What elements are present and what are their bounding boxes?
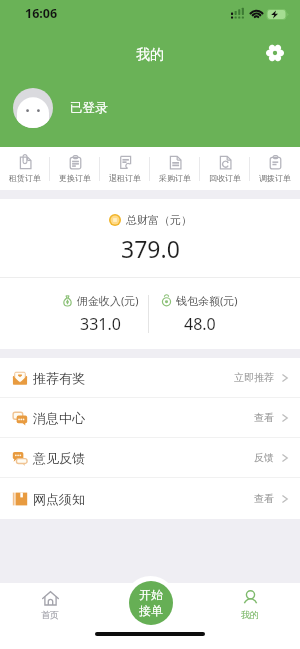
button[interactable]: 调拨订单	[250, 147, 300, 190]
button[interactable]: Settings	[262, 40, 288, 66]
button[interactable]: 推荐有奖	[0, 358, 300, 397]
staticText: 查看	[254, 492, 274, 505]
button[interactable]: 消息中心	[0, 398, 300, 437]
staticText: 首页	[41, 609, 59, 620]
staticText: 采购订单	[159, 173, 191, 183]
button[interactable]: 退租订单	[100, 147, 150, 190]
staticText: 推荐有奖	[33, 370, 85, 386]
staticText: 网点须知	[33, 491, 85, 507]
button[interactable]: 采购订单	[150, 147, 200, 190]
staticText: 48.0	[184, 313, 216, 335]
button[interactable]: 租赁订单	[0, 147, 50, 190]
staticText: 回收订单	[209, 173, 241, 183]
staticText: 立即推荐	[234, 371, 274, 384]
staticText: 租赁订单	[9, 173, 41, 183]
button[interactable]: 回收订单	[200, 147, 250, 190]
button[interactable]: 网点须知	[0, 478, 300, 519]
staticText: 379.0	[121, 233, 180, 264]
button[interactable]: 开始 接单	[129, 581, 173, 625]
staticText: 查看	[254, 411, 274, 424]
button[interactable]: 更换订单	[50, 147, 100, 190]
staticText: 总财富（元）	[126, 213, 192, 227]
staticText: 开始 接单	[139, 587, 163, 619]
staticText: 调拨订单	[259, 173, 291, 183]
staticText: 更换订单	[59, 173, 91, 183]
staticText: 16:06	[25, 5, 58, 22]
staticText: 反馈	[254, 451, 274, 464]
button[interactable]: 佣金收入(元)	[62, 278, 139, 349]
staticText: 钱包余额(元)	[176, 293, 238, 308]
staticText: 退租订单	[109, 173, 141, 183]
staticText: 我的	[136, 46, 164, 64]
staticText: 我的	[241, 609, 259, 620]
staticText: 意见反馈	[33, 450, 85, 466]
button[interactable]: 我的	[200, 583, 300, 627]
staticText: 佣金收入(元)	[77, 293, 139, 308]
button[interactable]: 首页	[0, 583, 100, 627]
staticText: 已登录	[70, 100, 108, 116]
button[interactable]: 钱包余额(元)	[161, 278, 238, 349]
button[interactable]: 意见反馈	[0, 438, 300, 477]
staticText: 331.0	[80, 313, 121, 335]
staticText: 消息中心	[33, 410, 85, 426]
